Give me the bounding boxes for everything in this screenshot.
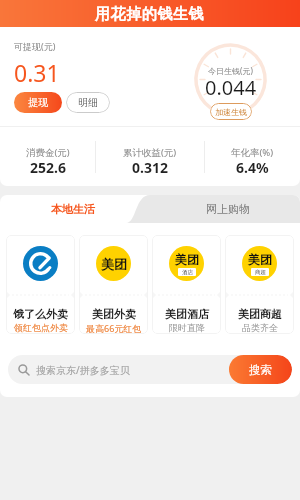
staticText: 252.6 (30, 158, 66, 177)
staticText: 网上购物 (206, 202, 250, 216)
staticText: 搜索京东/拼多多宝贝 (36, 363, 130, 377)
staticText: 美团商超 (238, 307, 282, 321)
button[interactable]: 美团 (79, 235, 148, 334)
staticText: 0.31 (14, 57, 60, 88)
staticText: 0.044 (205, 74, 257, 101)
button[interactable]: 加速生钱 (210, 103, 252, 120)
staticText: 美团 (175, 252, 199, 267)
staticText: 累计收益(元) (123, 146, 177, 159)
button[interactable]: 饿了么外卖 (6, 235, 75, 334)
staticText: 消费金(元) (26, 146, 70, 159)
button[interactable]: 明细 (66, 92, 110, 113)
button[interactable]: 消费金(元) (0, 127, 95, 186)
staticText: 明细 (78, 96, 98, 109)
staticText: 今日生钱(元) (208, 65, 253, 76)
staticText: 限时直降 (169, 322, 205, 333)
staticText: 领红包点外卖 (14, 322, 68, 333)
staticText: 品类齐全 (242, 322, 278, 333)
button[interactable]: 年化率(%) (205, 127, 300, 186)
staticText: 美团 (248, 252, 272, 267)
staticText: 最高66元红包 (86, 322, 142, 334)
staticText: 饿了么外卖 (13, 307, 68, 321)
button[interactable]: 累计收益(元) (96, 127, 204, 186)
staticText: 美团外卖 (92, 307, 136, 321)
button[interactable]: 美团 (152, 235, 221, 334)
button[interactable]: 美团 (225, 235, 294, 334)
button[interactable]: 网上购物 (155, 195, 300, 223)
staticText: 年化率(%) (231, 146, 274, 159)
staticText: 6.4% (236, 158, 269, 177)
staticText: 加速生钱 (215, 107, 247, 117)
staticText: 商超 (255, 269, 266, 276)
staticText: 美团酒店 (165, 307, 209, 321)
staticText: 本地生活 (51, 202, 95, 216)
staticText: 酒店 (182, 269, 193, 276)
staticText: 搜索 (249, 363, 272, 377)
staticText: 0.312 (132, 158, 168, 177)
button[interactable]: 本地生活 (0, 195, 145, 223)
staticText: 用花掉的钱生钱 (95, 5, 205, 24)
staticText: 美团 (101, 256, 127, 272)
button[interactable]: 搜索 (229, 355, 292, 384)
staticText: 提现 (28, 96, 48, 109)
staticText: 可提现(元) (14, 40, 56, 52)
button[interactable]: 提现 (14, 92, 62, 113)
